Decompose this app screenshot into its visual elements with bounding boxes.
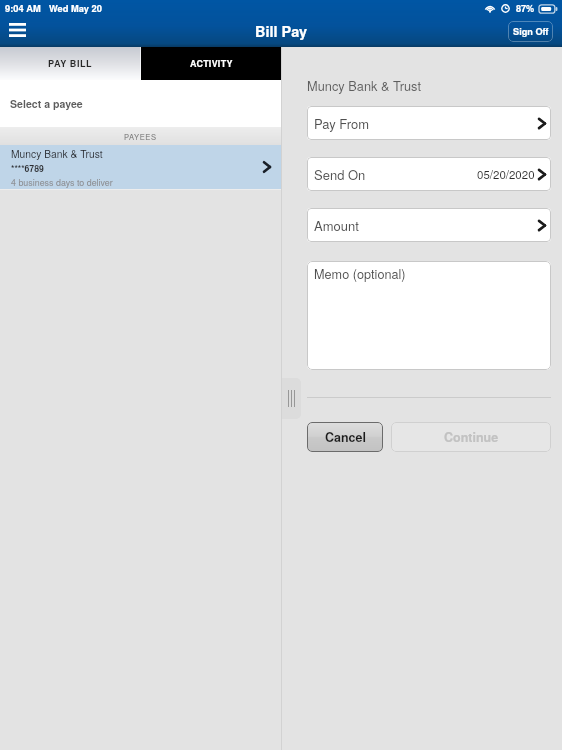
staticText: 87% — [516, 2, 535, 15]
button[interactable]: ACTIVITY — [141, 47, 281, 80]
button[interactable]: Continue — [391, 422, 551, 452]
button[interactable]: Amount — [307, 208, 551, 242]
button[interactable]: Menu — [1, 16, 33, 44]
button[interactable]: Cancel — [307, 422, 383, 452]
button[interactable]: Sign Off — [508, 21, 553, 42]
button[interactable]: Muncy Bank & Trust — [0, 145, 281, 189]
staticText: Send On — [314, 165, 366, 184]
button[interactable]: Send On — [307, 157, 551, 191]
staticText: Muncy Bank & Trust — [307, 76, 421, 94]
staticText: 9:04 AM — [5, 2, 41, 15]
staticText: Wed May 20 — [49, 2, 102, 15]
staticText: Memo (optional) — [314, 264, 406, 282]
button[interactable]: PAY BILL — [0, 47, 140, 80]
staticText: Bill Pay — [255, 21, 308, 42]
staticText: 4 business days to deliver — [11, 176, 113, 189]
staticText: Sign Off — [513, 25, 549, 38]
button[interactable]: Pay From — [307, 106, 551, 140]
staticText: ACTIVITY — [190, 57, 233, 70]
staticText: Cancel — [325, 428, 366, 446]
staticText: 05/20/2020 — [477, 166, 535, 182]
staticText: PAYEES — [124, 131, 157, 142]
staticText: Pay From — [314, 114, 370, 133]
button[interactable]: Memo (optional) — [307, 261, 551, 370]
staticText: Continue — [444, 428, 499, 446]
staticText: ****6789 — [11, 162, 44, 174]
staticText: Select a payee — [10, 96, 83, 111]
button[interactable]: Resize panel — [282, 378, 301, 419]
staticText: PAY BILL — [48, 57, 93, 70]
staticText: Amount — [314, 216, 359, 235]
staticText: Muncy Bank & Trust — [11, 146, 103, 161]
